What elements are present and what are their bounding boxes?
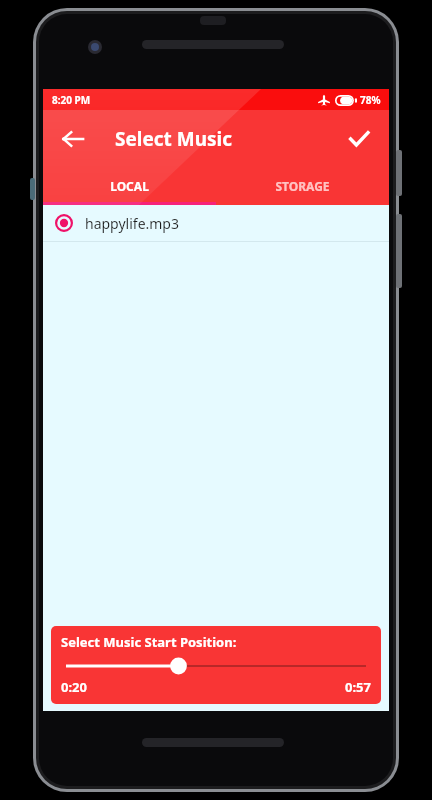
staticText: LOCAL: [110, 178, 149, 194]
staticText: Select Music: [115, 126, 233, 152]
button[interactable]: STORAGE: [216, 167, 389, 205]
staticText: 0:57: [345, 678, 371, 696]
staticText: STORAGE: [275, 178, 330, 194]
button[interactable]: Back: [51, 117, 95, 161]
staticText: 8:20 PM: [52, 93, 91, 107]
button[interactable]: happylife.mp3: [43, 205, 389, 241]
staticText: 78%: [360, 93, 381, 107]
button[interactable]: LOCAL: [43, 167, 216, 205]
button[interactable]: Select Music Start Position:: [51, 626, 381, 704]
staticText: happylife.mp3: [85, 214, 179, 233]
staticText: Select Music Start Position:: [61, 633, 237, 651]
staticText: 0:20: [61, 678, 87, 696]
button[interactable]: Confirm selection: [337, 117, 381, 161]
